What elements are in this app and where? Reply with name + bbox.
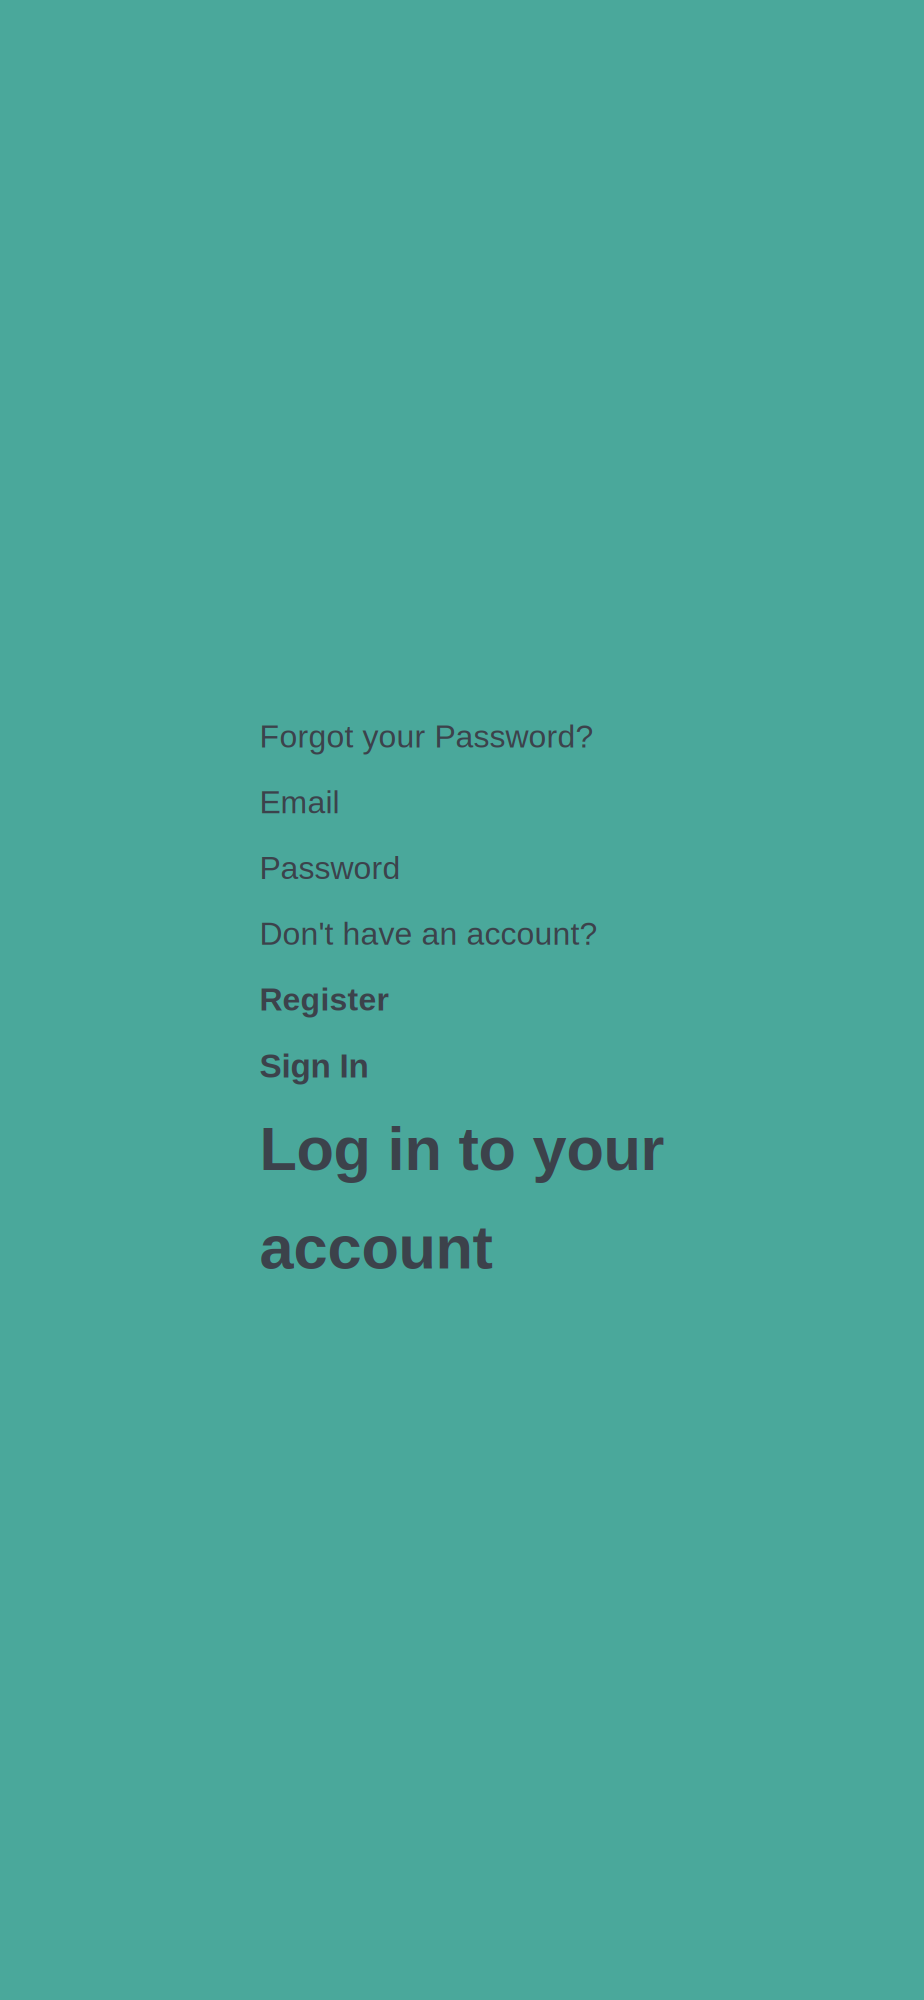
staticText: Sign In	[259, 1047, 368, 1084]
staticText: Don't have an account?	[259, 916, 597, 951]
staticText: account	[259, 1213, 492, 1281]
staticText: Register	[259, 981, 388, 1017]
staticText: Email	[259, 784, 339, 820]
staticText: Password	[259, 850, 400, 886]
staticText: Forgot your Password?	[259, 718, 593, 754]
staticText: Log in to your	[259, 1114, 664, 1183]
